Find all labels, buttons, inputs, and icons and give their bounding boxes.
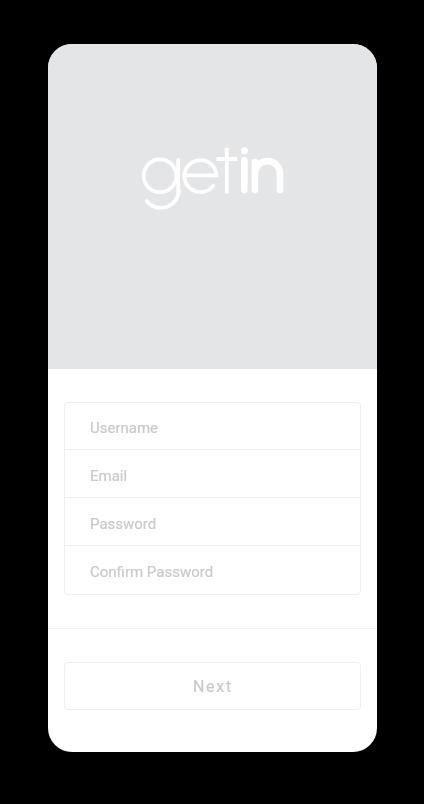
button[interactable]: Confirm Password [64,546,361,594]
staticText: Password [90,515,157,533]
staticText: Username [90,419,159,437]
button[interactable]: Username [64,402,361,450]
button[interactable]: Next [64,662,361,710]
staticText: Email [90,467,128,485]
other: getin logo [138,142,290,214]
button[interactable]: Password [64,498,361,546]
staticText: Confirm Password [90,563,214,581]
button[interactable]: Email [64,450,361,498]
staticText: Next [193,677,233,696]
